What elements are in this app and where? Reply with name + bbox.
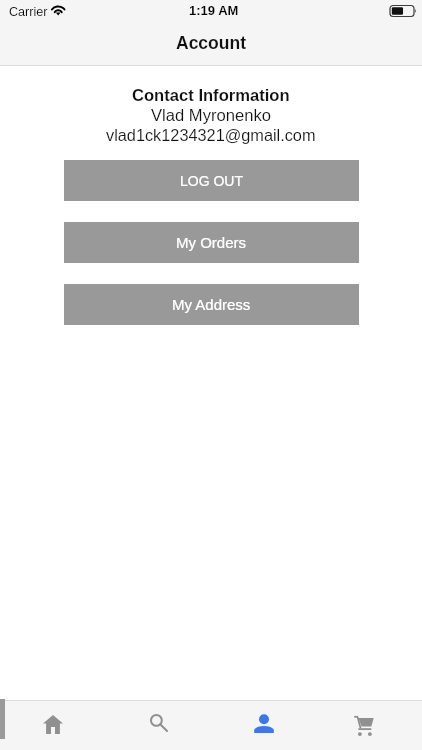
staticText: Carrier <box>9 5 48 19</box>
staticText: My Orders <box>176 234 247 251</box>
staticText: Account <box>176 33 246 53</box>
staticText: Vlad Myronenko <box>151 106 271 125</box>
staticText: 1:19 AM <box>189 3 239 18</box>
button[interactable]: Account <box>211 700 316 750</box>
button[interactable]: LOG OUT <box>64 160 359 201</box>
staticText: Contact Information <box>132 86 290 105</box>
staticText: My Address <box>172 296 251 313</box>
button[interactable]: Search <box>106 700 211 750</box>
staticText: vlad1ck1234321@gmail.com <box>106 126 316 144</box>
button[interactable]: My Address <box>64 284 359 325</box>
button[interactable]: My Orders <box>64 222 359 263</box>
staticText: LOG OUT <box>180 173 244 189</box>
button[interactable]: Cart <box>317 700 422 750</box>
button[interactable]: Home <box>0 700 105 750</box>
